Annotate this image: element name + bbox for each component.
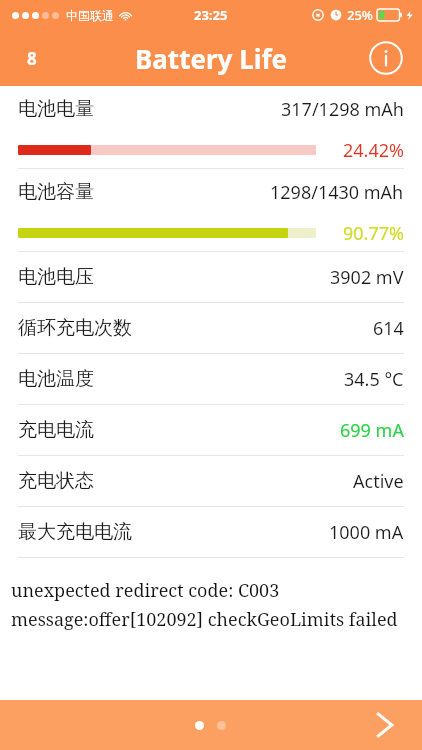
staticText: 317/1298 mAh xyxy=(281,97,404,122)
staticText: 电池温度 xyxy=(18,367,94,391)
staticText: 中国联通 xyxy=(66,8,114,23)
staticText: message:offer[102092] checkGeoLimits fai… xyxy=(11,607,398,632)
button[interactable]: 充电电流 xyxy=(0,405,422,455)
staticText: unexpected redirect code: C003 xyxy=(11,578,280,603)
staticText: 1000 mA xyxy=(329,520,404,545)
button[interactable]: Information xyxy=(367,39,405,77)
staticText: 3902 mV xyxy=(330,265,404,290)
staticText: 最大充电电流 xyxy=(18,520,132,544)
staticText: 循环充电次数 xyxy=(18,316,132,340)
staticText: 614 xyxy=(373,316,404,341)
staticText: 1298/1430 mAh xyxy=(270,180,404,205)
staticText: 25% xyxy=(347,6,373,24)
staticText: 电池电量 xyxy=(18,97,94,121)
button[interactable]: 电池电压 xyxy=(0,252,422,302)
button[interactable]: Menu xyxy=(14,40,50,76)
staticText: 90.77% xyxy=(343,221,404,246)
staticText: 电池容量 xyxy=(18,180,94,204)
button[interactable]: 充电状态 xyxy=(0,456,422,506)
button[interactable]: 电池温度 xyxy=(0,354,422,404)
staticText: Battery Life xyxy=(135,41,288,76)
staticText: 充电状态 xyxy=(18,469,94,493)
button[interactable]: Next xyxy=(362,703,406,747)
staticText: 电池电压 xyxy=(18,265,94,289)
staticText: 34.5 °C xyxy=(344,367,404,392)
staticText: 充电电流 xyxy=(18,418,94,442)
button[interactable]: 电池容量 xyxy=(0,169,422,251)
staticText: 24.42% xyxy=(343,138,404,163)
staticText: 699 mA xyxy=(340,418,404,443)
button[interactable]: 最大充电电流 xyxy=(0,507,422,557)
button[interactable]: 电池电量 xyxy=(0,86,422,168)
button[interactable]: 循环充电次数 xyxy=(0,303,422,353)
staticText: 8 xyxy=(27,47,37,70)
staticText: 23:25 xyxy=(194,6,228,24)
staticText: Active xyxy=(353,469,404,494)
